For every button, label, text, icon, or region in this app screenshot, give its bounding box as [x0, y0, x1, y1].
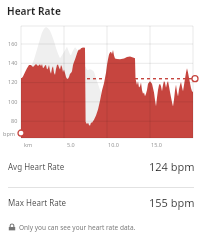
staticText: 155 bpm: [149, 195, 195, 210]
staticText: 160: [8, 40, 18, 47]
staticText: 100: [8, 98, 18, 105]
staticText: 80: [11, 117, 18, 124]
staticText: Max Heart Rate: [8, 197, 67, 208]
staticText: 15.0: [151, 141, 162, 148]
button[interactable]: Avg Heart Rate: [0, 145, 202, 187]
staticText: km: [24, 141, 33, 148]
staticText: 120: [8, 78, 18, 85]
staticText: bpm: [3, 130, 15, 137]
staticText: 140: [8, 59, 18, 66]
staticText: Heart Rate: [7, 4, 61, 18]
other: Private: [8, 223, 16, 231]
staticText: 124 bpm: [149, 159, 195, 174]
staticText: 5.0: [67, 141, 75, 148]
button[interactable]: Max Heart Rate: [0, 188, 202, 217]
staticText: Only you can see your heart rate data.: [19, 223, 136, 232]
staticText: 10.0: [108, 141, 119, 148]
staticText: Avg Heart Rate: [8, 161, 65, 172]
